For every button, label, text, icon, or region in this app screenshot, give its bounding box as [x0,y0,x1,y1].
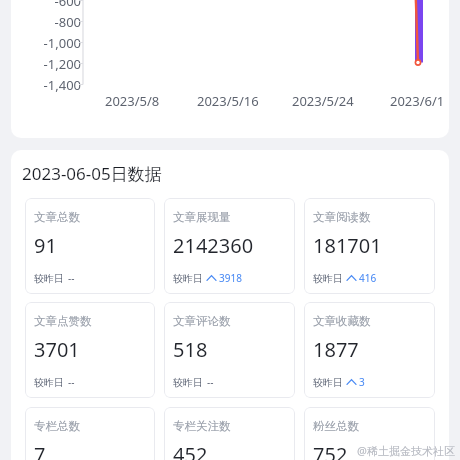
staticText: 518 [173,336,208,363]
staticText: 452 [173,441,208,460]
button[interactable]: 文章点赞数 [25,302,155,398]
button[interactable]: 粉丝总数 [304,407,435,460]
staticText: 416 [359,271,377,285]
staticText: -1,200 [43,55,81,73]
staticText: 文章点赞数 [34,314,92,328]
button[interactable]: 文章收藏数 [304,302,435,398]
staticText: 2142360 [173,232,254,259]
button[interactable]: -600 [11,0,449,138]
staticText: 91 [34,232,57,259]
staticText: 文章收藏数 [313,314,371,328]
staticText: 较昨日 [34,272,64,285]
staticText: 专栏总数 [34,419,80,433]
staticText: 文章阅读数 [313,210,371,224]
staticText: 2023/5/16 [197,92,259,110]
staticText: 较昨日 [173,272,203,285]
button[interactable]: 专栏关注数 [164,407,295,460]
button[interactable]: 文章评论数 [164,302,295,398]
staticText: 3701 [34,336,80,363]
staticText: -- [68,271,75,285]
button[interactable]: 专栏总数 [25,407,155,460]
staticText: -1,000 [43,34,81,52]
staticText: 较昨日 [313,376,343,389]
staticText: 较昨日 [313,272,343,285]
staticText: 较昨日 [34,376,64,389]
staticText: 3 [359,375,365,389]
staticText: 181701 [313,232,382,259]
staticText: 粉丝总数 [313,419,359,433]
staticText: 文章评论数 [173,314,231,328]
staticText: 7 [34,441,46,460]
staticText: 3918 [219,271,242,285]
staticText: -- [68,375,75,389]
staticText: -- [207,375,214,389]
staticText: 752 [313,441,348,460]
staticText: -600 [54,0,81,10]
staticText: -1,400 [43,76,81,94]
button[interactable]: 文章展现量 [164,198,295,294]
staticText: 文章总数 [34,210,80,224]
staticText: 文章展现量 [173,210,231,224]
staticText: 较昨日 [173,376,203,389]
staticText: 2023-06-05日数据 [22,162,162,185]
staticText: -800 [54,13,81,31]
staticText: 2023/6/1 [390,92,445,110]
staticText: 2023/5/24 [292,92,354,110]
button[interactable]: 文章总数 [25,198,155,294]
staticText: 2023/5/8 [105,92,160,110]
button[interactable]: 文章阅读数 [304,198,435,294]
staticText: 专栏关注数 [173,419,231,433]
staticText: 1877 [313,336,359,363]
staticText: @稀土掘金技术社区 [357,443,455,458]
